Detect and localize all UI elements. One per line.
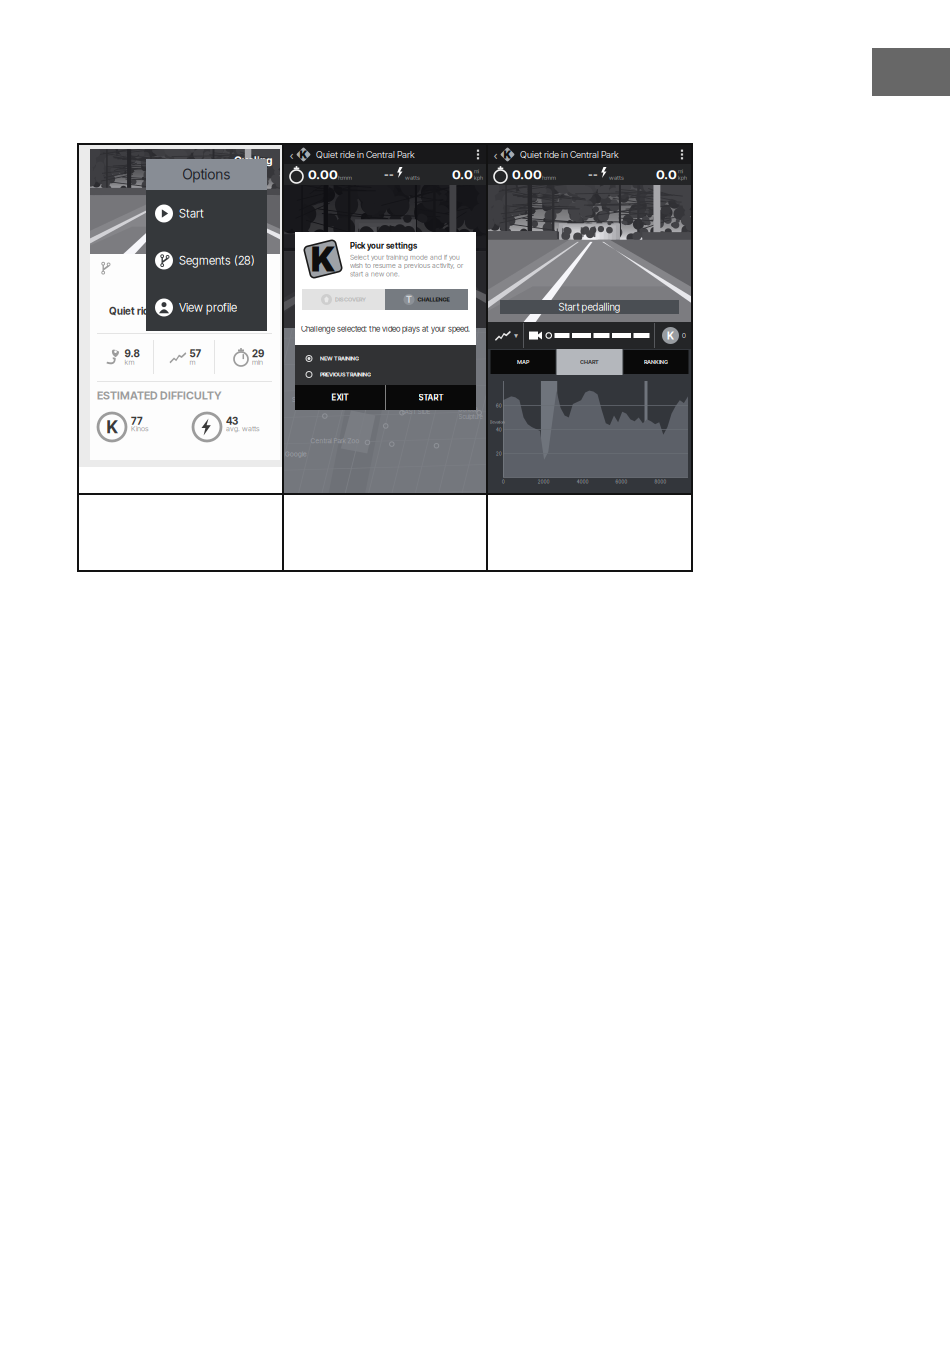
staticText: DISCOVERY (335, 296, 366, 303)
staticText: MANHATTAN (341, 349, 389, 359)
staticText: avg. watts (226, 424, 259, 433)
staticText: Start pedalling (558, 301, 620, 313)
staticText: 0 (682, 331, 686, 340)
staticText: km (124, 358, 134, 366)
staticText: Select your training mode and if you wis… (350, 253, 463, 278)
staticText: Segments (28) (179, 253, 255, 267)
staticText: Strawberry Fields (292, 396, 342, 404)
staticText: T (406, 294, 412, 305)
staticText: 0.00 (512, 166, 542, 182)
staticText: 29 (252, 347, 264, 360)
staticText: Kinos (131, 424, 148, 433)
staticText: ESTIMATED DIFFICULTY (97, 389, 222, 402)
button[interactable]: View profile (146, 284, 267, 331)
staticText: h:mm (542, 174, 556, 181)
staticText: Quiet ride in Central Park (109, 305, 225, 317)
staticText: View profile (179, 300, 237, 314)
staticText: m (189, 358, 195, 366)
button[interactable]: PREVIOUS TRAINING (295, 367, 476, 382)
staticText: watts (405, 174, 420, 181)
staticText: 20 (496, 451, 502, 456)
staticText: min (252, 358, 263, 366)
staticText: K (503, 148, 511, 161)
staticText: Central Park Zoo (310, 437, 359, 445)
staticText: -- (588, 168, 598, 181)
staticText: 6000 (615, 479, 627, 484)
staticText: K (299, 148, 307, 161)
staticText: 0.00 (308, 166, 338, 182)
staticText: 0.0 (452, 166, 473, 182)
staticText: RANKING (644, 359, 668, 365)
staticText: 77 (131, 415, 143, 427)
staticText: 43 (226, 415, 238, 427)
staticText: Options (182, 166, 230, 183)
staticText: EXIT (331, 393, 348, 402)
button[interactable]: CHART (556, 349, 622, 375)
staticText: Pick your settings (350, 241, 417, 251)
staticText: Google (285, 450, 307, 458)
staticText: ▾ (514, 331, 518, 340)
staticText: mi kph (678, 168, 687, 181)
staticText: Challenge selected: the video plays at y… (301, 324, 470, 334)
staticText: UPPER EAST SIDE (402, 401, 430, 415)
button[interactable]: MAP (490, 350, 555, 374)
staticText: h:mm (338, 174, 352, 181)
staticText: K (311, 238, 335, 280)
staticText: 4000 (577, 479, 589, 484)
button[interactable]: NEW TRAINING (295, 351, 476, 366)
staticText: 60 (496, 403, 502, 408)
staticText: ‹ (289, 146, 293, 163)
staticText: mi kph (474, 168, 483, 181)
staticText: 2000 (538, 479, 550, 484)
staticText: K (106, 416, 117, 437)
staticText: Quiet ride in Central Park (520, 149, 619, 160)
staticText: MAP (517, 359, 529, 365)
button[interactable]: Segments (28) (146, 237, 267, 284)
staticText: 8000 (654, 479, 666, 484)
staticText: 0.0 (656, 166, 677, 182)
staticText: K (667, 329, 674, 342)
staticText: 0 (502, 479, 505, 484)
staticText: watts (609, 174, 624, 181)
staticText: ‹ (493, 146, 497, 163)
staticText: 40 (496, 427, 502, 432)
staticText: Start (179, 206, 204, 220)
button[interactable]: T (385, 289, 468, 310)
button[interactable]: EXIT (295, 385, 385, 410)
staticText: -- (384, 168, 394, 181)
staticText: Quiet ride in Central Park (316, 149, 415, 160)
staticText: START (418, 393, 443, 402)
staticText: Cycling (234, 154, 272, 167)
staticText: CHALLENGE (417, 296, 449, 303)
staticText: Elevation (489, 419, 504, 425)
button[interactable]: RANKING (623, 350, 688, 374)
staticText: CHART (580, 359, 599, 365)
staticText: 57 (189, 347, 201, 360)
staticText: PREVIOUS TRAINING (320, 371, 371, 378)
staticText: NEW TRAINING (320, 355, 359, 362)
button[interactable]: START (386, 385, 476, 410)
staticText: 9.8 (124, 347, 139, 360)
button[interactable]: DISCOVERY (302, 289, 385, 310)
button[interactable]: Start (146, 190, 267, 237)
staticText: Seneca Sculpture (459, 406, 483, 420)
